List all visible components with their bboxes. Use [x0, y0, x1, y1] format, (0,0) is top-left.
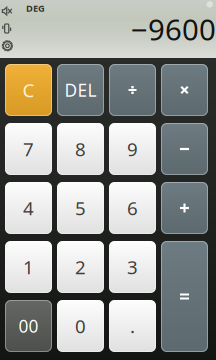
- button[interactable]: Plus: [161, 182, 208, 234]
- staticText: 00: [18, 314, 38, 337]
- staticText: DEG: [26, 2, 45, 14]
- staticText: 7: [23, 137, 34, 161]
- staticText: 8: [75, 137, 86, 161]
- staticText: 6: [127, 196, 138, 220]
- button[interactable]: DEL: [57, 64, 104, 116]
- button[interactable]: 3: [109, 241, 156, 293]
- staticText: 3: [127, 255, 138, 279]
- button[interactable]: Minus: [161, 123, 208, 175]
- staticText: −9600: [131, 9, 216, 48]
- button[interactable]: 8: [57, 123, 104, 175]
- staticText: 9: [127, 137, 138, 161]
- button[interactable]: 7: [5, 123, 52, 175]
- button[interactable]: 6: [109, 182, 156, 234]
- staticText: 5: [75, 196, 86, 220]
- button[interactable]: Equals: [161, 241, 208, 352]
- button[interactable]: .: [109, 300, 156, 352]
- staticText: 1: [23, 255, 34, 279]
- staticText: .: [130, 314, 135, 338]
- button[interactable]: Settings: [0, 37, 16, 55]
- button[interactable]: 2: [57, 241, 104, 293]
- button[interactable]: Multiply: [161, 64, 208, 116]
- staticText: 2: [75, 255, 86, 279]
- staticText: 0: [75, 314, 86, 338]
- button[interactable]: 5: [57, 182, 104, 234]
- button[interactable]: 0: [57, 300, 104, 352]
- button[interactable]: Sound off: [0, 3, 16, 19]
- button[interactable]: 00: [5, 300, 52, 352]
- staticText: DEL: [64, 78, 96, 101]
- button[interactable]: 1: [5, 241, 52, 293]
- button[interactable]: C: [5, 64, 52, 116]
- staticText: 4: [23, 196, 34, 220]
- staticText: C: [22, 78, 34, 102]
- button[interactable]: 4: [5, 182, 52, 234]
- button[interactable]: 9: [109, 123, 156, 175]
- button[interactable]: Vibrate: [0, 20, 15, 37]
- button[interactable]: DEG: [24, 0, 47, 16]
- button[interactable]: Divide: [109, 64, 156, 116]
